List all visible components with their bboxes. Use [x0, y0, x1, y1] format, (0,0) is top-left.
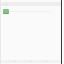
button[interactable]: Featured item	[3, 9, 9, 14]
